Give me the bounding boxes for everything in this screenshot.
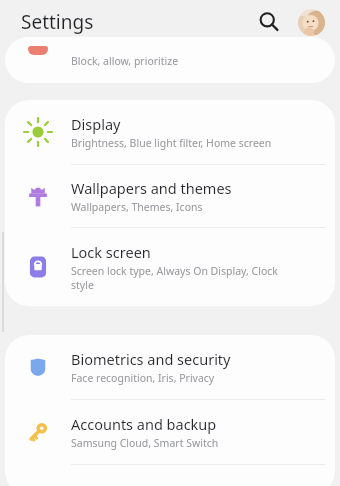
- staticText: Screen lock type, Always On Display, Clo…: [71, 264, 299, 292]
- staticText: Samsung Cloud, Smart Switch: [71, 436, 219, 450]
- button[interactable]: Lock screen: [5, 228, 335, 306]
- button[interactable]: Biometrics and security: [5, 335, 335, 399]
- staticText: Biometrics and security: [71, 349, 231, 369]
- other: Profile: [298, 9, 325, 36]
- staticText: Accounts and backup: [71, 414, 217, 434]
- staticText: Wallpapers, Themes, Icons: [71, 200, 203, 214]
- button[interactable]: Wallpapers and themes: [5, 165, 335, 227]
- button[interactable]: Profile: [297, 8, 326, 37]
- staticText: Display: [71, 114, 121, 134]
- button[interactable]: Block, allow, prioritize: [5, 37, 335, 83]
- staticText: Face recognition, Iris, Privacy: [71, 371, 215, 385]
- button[interactable]: Display: [5, 100, 335, 164]
- staticText: Settings: [21, 9, 94, 35]
- button[interactable]: Accounts and backup: [5, 400, 335, 464]
- staticText: Lock screen: [71, 242, 151, 262]
- staticText: Brightness, Blue light filter, Home scre…: [71, 136, 272, 150]
- button[interactable]: Search: [254, 7, 284, 37]
- staticText: Wallpapers and themes: [71, 178, 232, 198]
- staticText: Block, allow, prioritize: [71, 54, 179, 68]
